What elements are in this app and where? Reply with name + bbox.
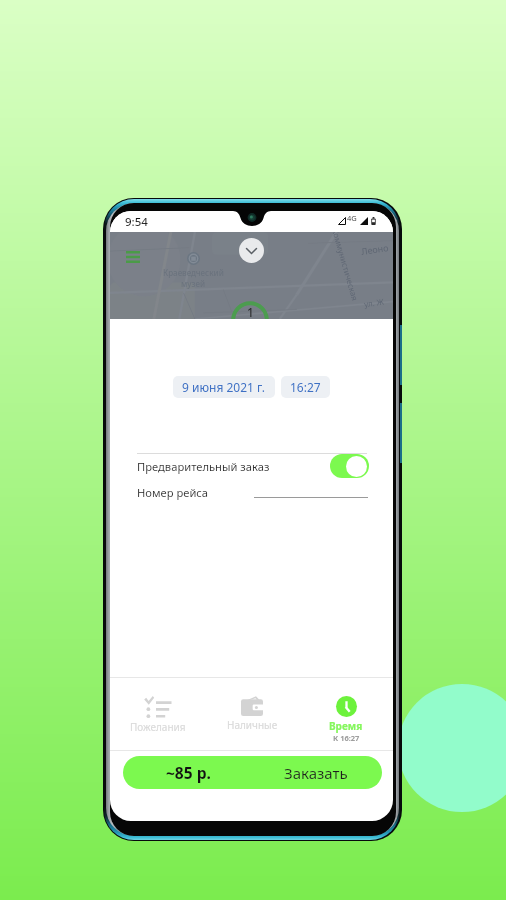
staticText: Номер рейса xyxy=(137,485,209,500)
staticText: музей xyxy=(181,278,206,289)
staticText: ~85 р. xyxy=(166,762,211,783)
button[interactable]: ~85 р. xyxy=(123,756,382,789)
staticText: Предварительный заказ xyxy=(137,459,270,474)
staticText: ул. Ж xyxy=(363,296,385,309)
button[interactable]: 9 июня 2021 г. xyxy=(173,376,275,398)
button[interactable]: Preorder toggle xyxy=(330,454,369,478)
staticText: 1 xyxy=(247,304,254,319)
staticText: Пожелания xyxy=(130,720,186,734)
staticText: 9 июня 2021 г. xyxy=(182,379,266,395)
button[interactable]: Наличные xyxy=(205,678,299,750)
staticText: Краеведческий xyxy=(163,267,224,278)
staticText: 9:54 xyxy=(125,214,148,230)
button[interactable]: Пожелания xyxy=(110,678,205,750)
staticText: Леоно xyxy=(360,241,390,257)
button[interactable]: Collapse map xyxy=(239,238,264,263)
staticText: Заказать xyxy=(284,763,348,783)
staticText: Время xyxy=(329,719,363,733)
staticText: 4G xyxy=(347,213,357,223)
button[interactable]: Время xyxy=(299,678,393,750)
staticText: К 16:27 xyxy=(333,733,360,743)
staticText: Наличные xyxy=(227,718,278,732)
staticText: Коммунистическая xyxy=(330,232,361,302)
button[interactable]: Menu xyxy=(119,243,147,271)
staticText: 16:27 xyxy=(290,379,321,395)
button[interactable]: 16:27 xyxy=(281,376,330,398)
